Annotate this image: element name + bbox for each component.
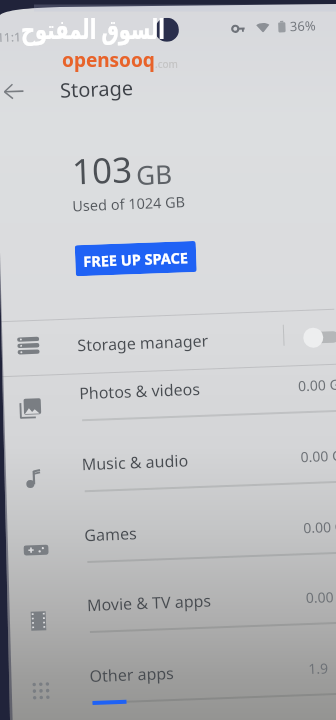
button[interactable]: Other apps (11, 647, 336, 720)
button[interactable]: Back (0, 74, 31, 109)
staticText: .com (155, 57, 178, 71)
button[interactable]: Photos & videos (0, 364, 336, 448)
staticText: 0.00 G (300, 446, 336, 466)
staticText: 11:1 (0, 28, 21, 45)
staticText: السوق المفتوح (21, 10, 165, 47)
staticText: 1.9 (308, 658, 329, 678)
staticText: Photos & videos (79, 378, 200, 404)
staticText: FREE UP SPACE (83, 247, 189, 271)
staticText: 0.00 G (298, 375, 336, 395)
staticText: 103 (71, 145, 134, 195)
button[interactable]: Music & audio (3, 435, 336, 519)
staticText: Games (84, 522, 138, 546)
staticText: Used of 1024 GB (72, 191, 186, 215)
button[interactable]: Movie & TV apps (8, 576, 336, 660)
staticText: Other apps (89, 662, 175, 687)
staticText: Movie & TV apps (86, 590, 212, 616)
button[interactable]: FREE UP SPACE (75, 241, 197, 276)
staticText: Storage (59, 74, 133, 104)
staticText: 0.00 G (303, 517, 336, 537)
staticText: GB (135, 156, 173, 192)
button[interactable]: Games (6, 506, 336, 590)
staticText: Storage manager (77, 329, 209, 356)
staticText: 0.00 G (305, 587, 336, 607)
staticText: 36% (289, 16, 316, 35)
staticText: opensooq (62, 47, 155, 73)
staticText: Music & audio (81, 449, 189, 475)
button[interactable]: Storage manager (0, 310, 336, 376)
